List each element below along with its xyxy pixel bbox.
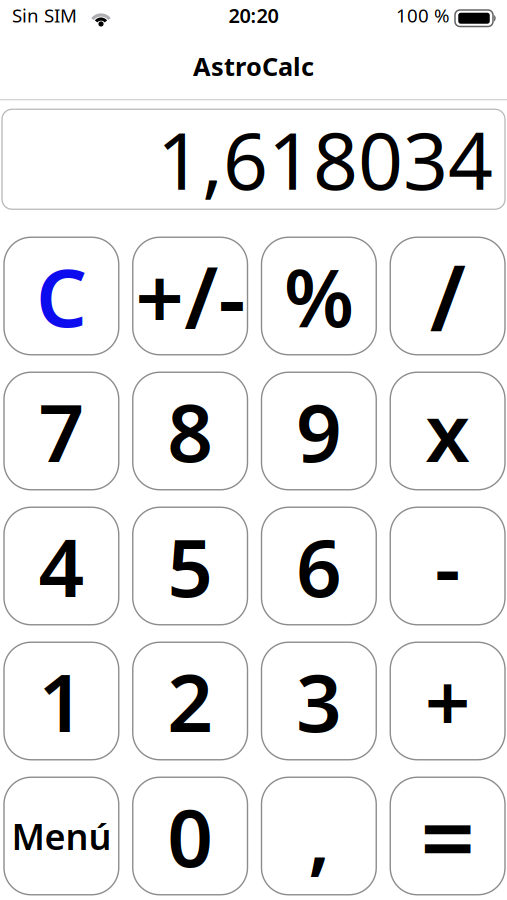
button[interactable]: , <box>261 777 376 895</box>
button[interactable]: x <box>390 372 505 490</box>
staticText: 9 <box>296 378 342 484</box>
button[interactable]: 7 <box>4 372 119 490</box>
staticText: x <box>425 378 470 484</box>
staticText: +/- <box>135 239 245 353</box>
staticText: / <box>430 236 466 356</box>
staticText: 4 <box>38 513 84 619</box>
staticText: 3 <box>296 648 342 754</box>
staticText: 7 <box>38 378 84 484</box>
button[interactable]: 1 <box>4 642 119 760</box>
staticText: + <box>425 648 471 754</box>
staticText: 0 <box>167 783 213 889</box>
staticText: - <box>435 513 461 619</box>
staticText: 5 <box>167 513 213 619</box>
button[interactable]: = <box>390 777 505 895</box>
button[interactable]: 8 <box>133 372 248 490</box>
button[interactable]: +/- <box>133 237 248 355</box>
staticText: 6 <box>296 513 342 619</box>
staticText: AstroCalc <box>193 49 314 83</box>
button[interactable]: 5 <box>133 507 248 625</box>
button[interactable]: / <box>390 237 505 355</box>
staticText: Menú <box>11 812 111 860</box>
staticText: 100 % <box>396 3 450 28</box>
button[interactable]: % <box>261 237 376 355</box>
button[interactable]: 2 <box>133 642 248 760</box>
button[interactable]: 9 <box>261 372 376 490</box>
button[interactable]: 0 <box>133 777 248 895</box>
staticText: C <box>36 243 87 349</box>
staticText: Sin SIM <box>12 3 77 28</box>
button[interactable]: 6 <box>261 507 376 625</box>
staticText: % <box>284 243 354 349</box>
staticText: 1 <box>38 648 84 754</box>
staticText: = <box>420 772 475 900</box>
button[interactable]: 3 <box>261 642 376 760</box>
staticText: 8 <box>167 378 213 484</box>
button[interactable]: + <box>390 642 505 760</box>
staticText: 2 <box>167 648 213 754</box>
staticText: 20:20 <box>228 2 278 29</box>
staticText: 1,618034 <box>157 107 493 211</box>
staticText: , <box>308 783 330 889</box>
button[interactable]: Menú <box>4 777 119 895</box>
button[interactable]: C <box>4 237 119 355</box>
button[interactable]: - <box>390 507 505 625</box>
button[interactable]: 4 <box>4 507 119 625</box>
